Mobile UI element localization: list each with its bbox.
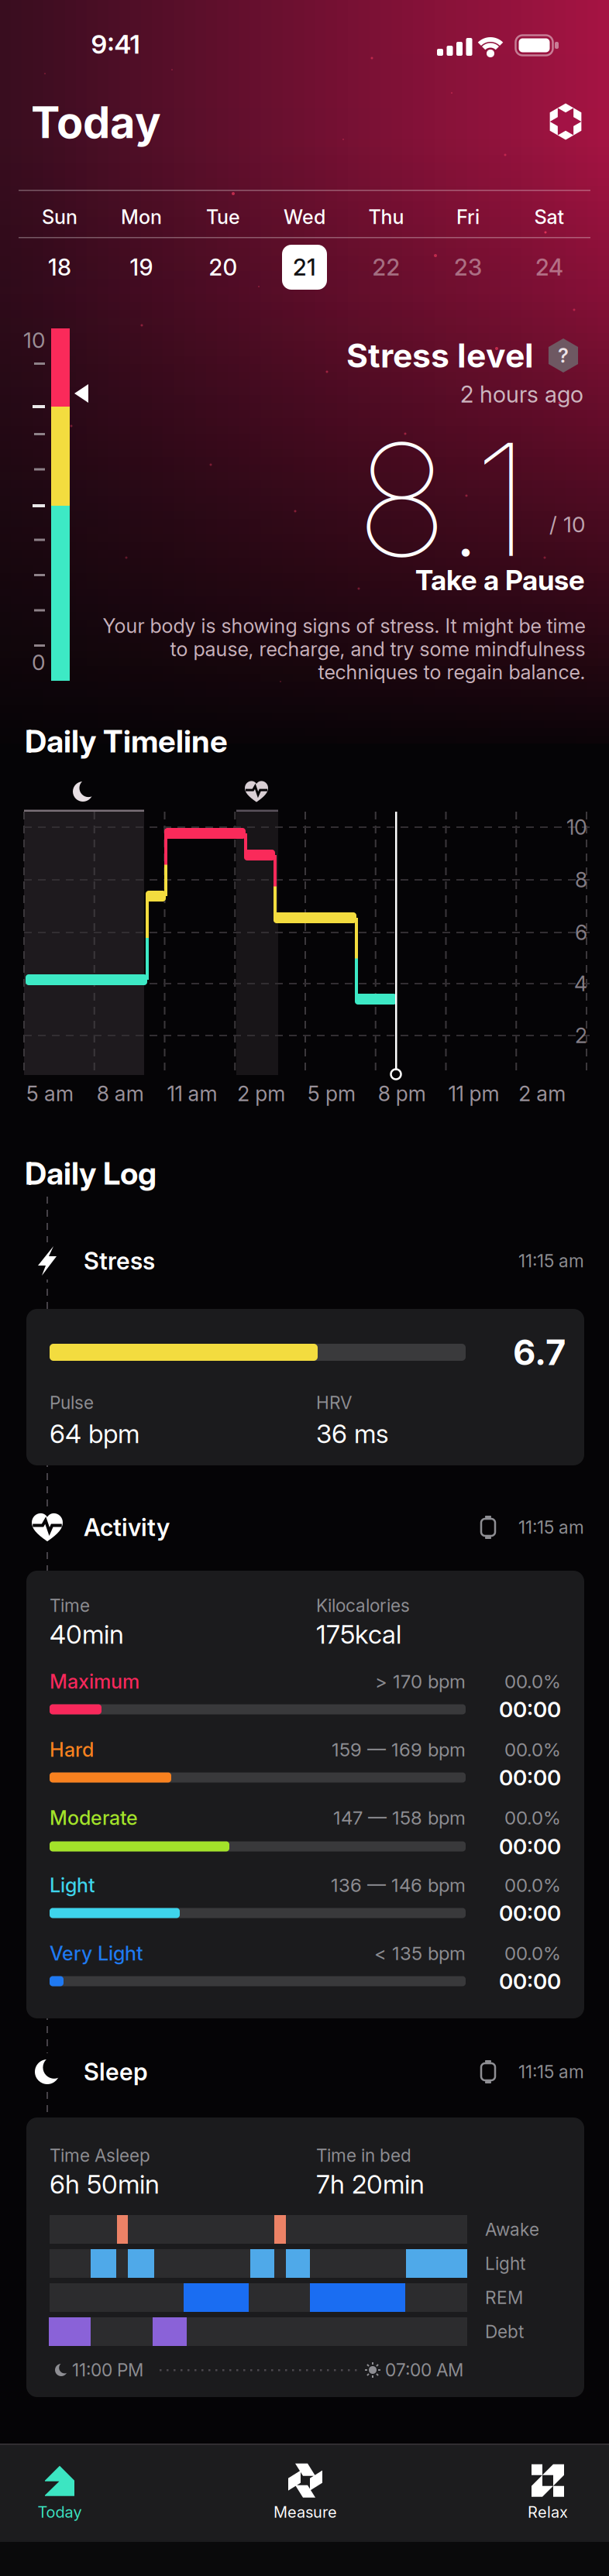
staticText: Daily Timeline [25, 723, 228, 759]
staticText: 136 — 146 bpm [331, 1874, 466, 1896]
staticText: Awake [485, 2219, 539, 2240]
staticText: < 135 bpm [374, 1942, 466, 1964]
staticText: Daily Log [25, 1155, 157, 1192]
button[interactable]: Relax [494, 2463, 602, 2521]
staticText: 4 [574, 971, 587, 996]
staticText: Light [485, 2253, 525, 2274]
staticText: 40min [50, 1619, 124, 1649]
staticText: 2 [575, 1023, 587, 1048]
staticText: 2 pm [237, 1081, 285, 1106]
staticText: 00:00 [499, 1834, 561, 1859]
button[interactable]: 22 [361, 242, 411, 292]
staticText: 00.0% [504, 1874, 561, 1896]
staticText: 159 — 169 bpm [332, 1739, 466, 1761]
staticText: 6.7 [513, 1332, 566, 1373]
staticText: HRV [316, 1392, 352, 1413]
staticText: Wed [284, 205, 325, 228]
staticText: Thu [368, 205, 404, 228]
staticText: 00:00 [499, 1968, 561, 1994]
staticText: 5 pm [308, 1081, 356, 1106]
staticText: 19 [130, 254, 153, 281]
staticText: 22 [372, 254, 400, 281]
staticText: Stress [84, 1247, 155, 1275]
button[interactable]: Time [26, 1571, 584, 2018]
staticText: 147 — 158 bpm [333, 1807, 466, 1829]
staticText: Sat [534, 205, 564, 228]
button[interactable]: Measure [243, 2463, 367, 2521]
staticText: REM [485, 2287, 523, 2308]
staticText: 11:15 am [518, 2061, 584, 2082]
staticText: 10 [23, 327, 45, 353]
staticText: 00:00 [499, 1697, 561, 1722]
staticText: Moderate [50, 1806, 138, 1829]
button[interactable]: 19 [117, 242, 166, 292]
staticText: 8.1 [356, 408, 530, 591]
staticText: Today [38, 2503, 82, 2521]
staticText: Time [50, 1595, 90, 1616]
staticText: 36 ms [316, 1418, 389, 1449]
staticText: 11 pm [448, 1081, 499, 1106]
staticText: Time in bed [316, 2145, 411, 2166]
button[interactable]: Today [5, 2463, 114, 2521]
staticText: Very Light [50, 1942, 143, 1965]
staticText: 00:00 [499, 1765, 561, 1790]
staticText: 00:00 [499, 1900, 561, 1926]
button[interactable]: 21 [280, 242, 329, 292]
staticText: 64 bpm [50, 1418, 139, 1449]
staticText: Kilocalories [316, 1595, 410, 1616]
staticText: Your body is showing signs of stress. It… [102, 614, 585, 684]
staticText: Debt [485, 2321, 524, 2342]
staticText: Sleep [84, 2058, 148, 2086]
staticText: 9:41 [91, 29, 140, 59]
staticText: 21 [293, 254, 316, 281]
staticText: Relax [528, 2503, 568, 2521]
button[interactable]: ? [546, 338, 580, 373]
button[interactable] [546, 102, 585, 141]
staticText: 23 [454, 254, 482, 281]
staticText: 07:00 AM [385, 2360, 463, 2380]
staticText: 8 [575, 868, 587, 892]
staticText: 00.0% [504, 1807, 561, 1829]
button[interactable]: 23 [443, 242, 493, 292]
staticText: 8 pm [378, 1081, 426, 1106]
staticText: 11:15 am [518, 1517, 584, 1538]
button[interactable]: 18 [35, 242, 84, 292]
staticText: Hard [50, 1738, 94, 1761]
staticText: 6h 50min [50, 2169, 160, 2199]
staticText: Pulse [50, 1392, 94, 1413]
staticText: 10 [566, 815, 587, 839]
staticText: 6 [575, 920, 587, 945]
staticText: / 10 [549, 512, 585, 537]
staticText: > 170 bpm [375, 1670, 466, 1692]
staticText: Sun [42, 205, 77, 228]
staticText: Today [31, 97, 161, 148]
staticText: 20 [209, 254, 237, 281]
staticText: Activity [84, 1513, 170, 1541]
staticText: Light [50, 1874, 95, 1897]
staticText: Fri [456, 205, 480, 228]
button[interactable]: 6.7 [26, 1309, 584, 1465]
button[interactable]: Time Asleep [26, 2117, 584, 2397]
staticText: Tue [206, 205, 240, 228]
staticText: 24 [535, 254, 563, 281]
staticText: 175kcal [316, 1619, 401, 1649]
staticText: 8 am [97, 1081, 144, 1106]
staticText: ? [558, 344, 569, 367]
staticText: 5 am [26, 1081, 74, 1106]
staticText: Take a Pause [415, 564, 585, 597]
staticText: Maximum [50, 1670, 139, 1693]
staticText: 11:15 am [518, 1251, 584, 1271]
staticText: 7h 20min [316, 2169, 425, 2199]
staticText: Mon [121, 205, 162, 228]
staticText: Time Asleep [50, 2145, 150, 2166]
staticText: 11 am [167, 1081, 217, 1106]
staticText: 0 [32, 649, 45, 675]
staticText: 2 am [519, 1081, 566, 1106]
staticText: 00.0% [504, 1670, 561, 1692]
button[interactable]: 20 [198, 242, 248, 292]
staticText: 00.0% [504, 1942, 561, 1964]
button[interactable]: 24 [525, 242, 574, 292]
staticText: 11:00 PM [72, 2360, 143, 2380]
staticText: Stress level [346, 336, 534, 375]
staticText: 18 [48, 254, 71, 281]
